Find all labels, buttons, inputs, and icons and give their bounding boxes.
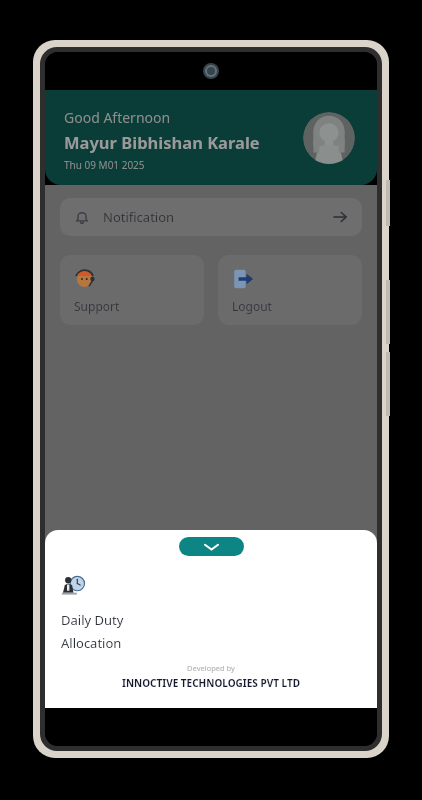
staticText: Allocation <box>61 634 122 652</box>
staticText: Thu 09 M01 2025 <box>64 158 145 172</box>
staticText: INNOCTIVE TECHNOLOGIES PVT LTD <box>45 676 377 690</box>
staticText: Good Afternoon <box>64 108 171 127</box>
staticText: Notification <box>103 208 175 226</box>
button[interactable]: Daily Duty <box>45 573 377 652</box>
staticText: Logout <box>232 298 272 314</box>
staticText: Mayur Bibhishan Karale <box>64 131 260 153</box>
staticText: Support <box>74 298 120 314</box>
button[interactable]: Logout <box>218 255 362 325</box>
button[interactable]: Profile <box>303 112 355 164</box>
button[interactable]: Support <box>60 255 204 325</box>
button[interactable]: Notification <box>60 198 362 236</box>
button[interactable]: Collapse <box>179 537 244 556</box>
staticText: Developed by <box>45 663 377 673</box>
staticText: Daily Duty <box>61 611 124 629</box>
